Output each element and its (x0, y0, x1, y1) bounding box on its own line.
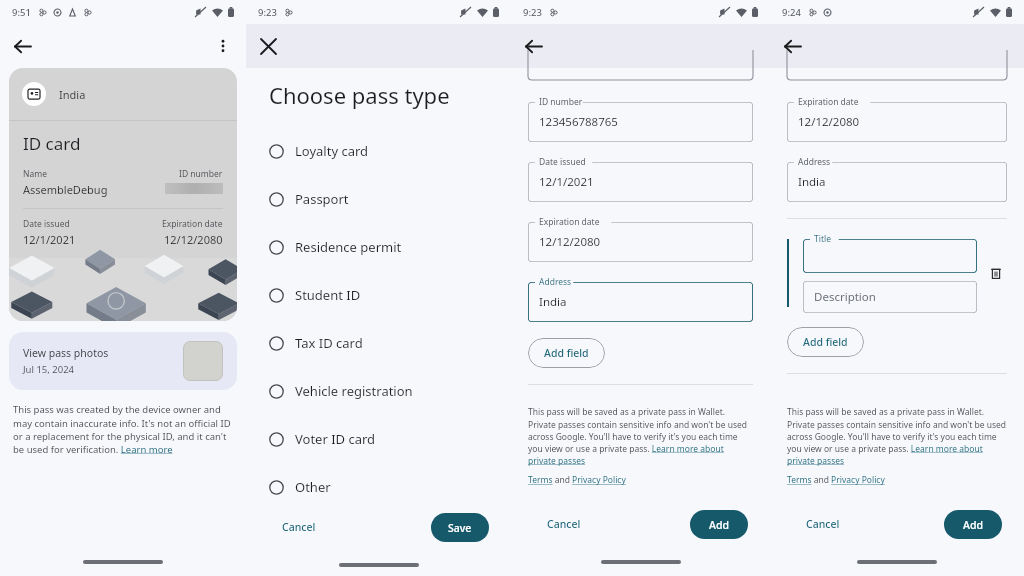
staticText: Expiration date (798, 96, 859, 108)
button[interactable]: Residence permit (246, 223, 511, 271)
staticText: Loyalty card (295, 142, 369, 160)
button[interactable]: Delete field (985, 262, 1007, 284)
staticText: 9:23 (258, 6, 277, 19)
staticText: Date issued (539, 156, 586, 168)
staticText: Address (798, 156, 831, 168)
staticText: Date issued (23, 218, 70, 230)
staticText: 12/12/2080 (539, 234, 601, 250)
staticText: 12/1/2021 (539, 174, 594, 190)
staticText: ID number (539, 96, 583, 108)
button[interactable]: Back (515, 28, 551, 64)
staticText: Other (295, 478, 331, 496)
button[interactable]: Student ID (246, 271, 511, 319)
staticText: Cancel (282, 520, 316, 534)
button[interactable]: India (528, 282, 753, 322)
button[interactable]: Other (246, 463, 511, 511)
button[interactable]: Description (803, 281, 977, 313)
button[interactable]: Back (4, 28, 40, 64)
staticText: Add (709, 518, 729, 532)
button[interactable]: Loyalty card (246, 127, 511, 175)
staticText: Expiration date (162, 218, 223, 230)
staticText: Tax ID card (295, 334, 363, 352)
button[interactable]: Passport (246, 175, 511, 223)
staticText: ID card (23, 132, 81, 155)
staticText: AssembleDebug (23, 182, 108, 197)
button[interactable]: India (9, 68, 237, 321)
button[interactable]: Close (250, 28, 286, 64)
staticText: Terms and Privacy Policy (787, 474, 885, 486)
staticText: Cancel (547, 517, 581, 531)
staticText: Choose pass type (269, 80, 450, 110)
staticText: Description (814, 289, 876, 305)
staticText: This pass was created by the device owne… (13, 403, 233, 455)
button[interactable]: Save (431, 513, 489, 542)
staticText: 12/12/2080 (798, 114, 860, 130)
button[interactable]: 12/12/2080 (528, 222, 753, 262)
staticText: 12/1/2021 (23, 232, 76, 247)
staticText: View pass photos (23, 346, 109, 360)
staticText: Name (23, 168, 47, 180)
button[interactable]: Add (690, 510, 748, 539)
button[interactable]: Cancel (268, 511, 330, 543)
staticText: 12/12/2080 (164, 232, 223, 247)
button[interactable]: Add field (787, 327, 864, 357)
staticText: This pass will be saved as a private pas… (787, 406, 1007, 466)
button[interactable]: 123456788765 (528, 102, 753, 142)
staticText: Terms and Privacy Policy (528, 474, 626, 486)
button[interactable]: 12/12/2080 (787, 102, 1007, 142)
staticText: India (798, 174, 826, 190)
button[interactable]: Add field (528, 338, 605, 368)
staticText: 9:23 (523, 6, 542, 19)
staticText: 123456788765 (539, 114, 618, 130)
button[interactable]: India (787, 162, 1007, 202)
button[interactable]: Vehicle registration (246, 367, 511, 415)
staticText: Add field (544, 346, 589, 360)
staticText: Title (814, 233, 831, 245)
staticText: Save (448, 521, 472, 535)
staticText: This pass will be saved as a private pas… (528, 406, 753, 466)
button[interactable]: Cancel (792, 508, 854, 540)
staticText: 9:51 (12, 6, 31, 19)
button[interactable]: Back (774, 28, 810, 64)
staticText: Cancel (806, 517, 840, 531)
button[interactable]: View pass photos (9, 332, 237, 390)
button[interactable]: Tax ID card (246, 319, 511, 367)
staticText: Residence permit (295, 238, 402, 256)
staticText: India (539, 294, 567, 310)
staticText: Vehicle registration (295, 382, 413, 400)
staticText: India (59, 87, 86, 102)
staticText: Add field (803, 335, 848, 349)
button[interactable]: 12/1/2021 (528, 162, 753, 202)
button[interactable]: More options (206, 29, 240, 63)
staticText: Expiration date (539, 216, 600, 228)
button[interactable] (803, 239, 977, 273)
staticText: Passport (295, 190, 349, 208)
staticText: Student ID (295, 286, 361, 304)
staticText: Address (539, 276, 572, 288)
staticText: Voter ID card (295, 430, 376, 448)
button[interactable]: Voter ID card (246, 415, 511, 463)
button[interactable]: Cancel (533, 508, 595, 540)
staticText: Add (963, 518, 983, 532)
staticText: ID number (179, 168, 223, 180)
button[interactable]: Add (944, 510, 1002, 539)
staticText: 9:24 (782, 6, 801, 19)
staticText: Jul 15, 2024 (23, 363, 75, 376)
